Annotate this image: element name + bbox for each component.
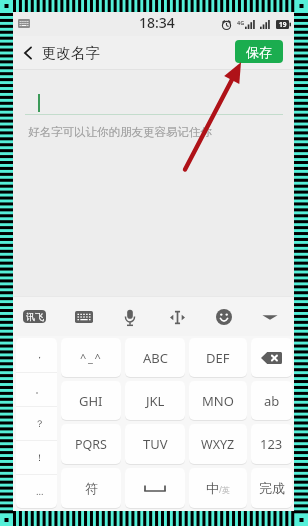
button[interactable]: Space — [125, 468, 185, 508]
button[interactable]: PQRS — [61, 424, 121, 464]
button[interactable]: 完成 — [251, 468, 292, 508]
staticText: TUV — [143, 435, 168, 453]
staticText: 19 — [279, 20, 287, 29]
staticText: 18:34 — [139, 13, 175, 32]
staticText: 4G — [237, 19, 245, 26]
staticText: 123 — [260, 435, 283, 453]
button[interactable]: TUV — [125, 424, 185, 464]
staticText: ， — [35, 349, 45, 361]
staticText: 讯飞 — [26, 311, 44, 322]
button[interactable]: Delete — [251, 338, 292, 377]
button[interactable]: ， — [16, 338, 57, 372]
staticText: ？ — [35, 418, 45, 430]
button[interactable]: Back — [13, 44, 106, 62]
other: Delete — [251, 338, 292, 377]
staticText: ab — [264, 392, 280, 410]
staticText: ！ — [35, 452, 45, 464]
button[interactable]: ABC — [125, 338, 185, 377]
button[interactable]: DEF — [189, 338, 247, 377]
staticText: ^_^ — [80, 350, 103, 365]
button[interactable]: Emoji — [210, 303, 238, 331]
staticText: 符 — [85, 480, 98, 496]
button[interactable]: MNO — [189, 381, 247, 420]
staticText: 保存 — [246, 44, 272, 60]
other: Back — [21, 46, 35, 60]
staticText: … — [36, 485, 44, 498]
button[interactable]: ！ — [16, 441, 57, 474]
staticText: 中 — [206, 480, 219, 496]
button[interactable]: Voice input — [116, 303, 144, 331]
button[interactable]: 。 — [16, 373, 57, 406]
staticText: 完成 — [259, 480, 285, 496]
button[interactable]: Hide keyboard — [256, 303, 284, 331]
staticText: PQRS — [75, 436, 107, 453]
button[interactable]: GHI — [61, 381, 121, 420]
staticText: 好名字可以让你的朋友更容易记住你 — [28, 125, 212, 139]
staticText: 更改名字 — [42, 44, 100, 62]
staticText: WXYZ — [201, 436, 235, 453]
button[interactable]: ^_^ — [61, 338, 121, 377]
button[interactable]: … — [16, 475, 57, 508]
button[interactable]: 讯飞 — [23, 310, 46, 323]
button[interactable]: Keyboard — [70, 303, 98, 331]
button[interactable]: 123 — [251, 424, 292, 464]
staticText: 。 — [35, 384, 45, 396]
staticText: JKL — [146, 392, 165, 410]
button[interactable]: 符 — [61, 468, 121, 508]
button[interactable]: 中 — [189, 468, 247, 508]
staticText: GHI — [79, 392, 103, 410]
staticText: ABC — [143, 349, 168, 367]
button[interactable]: ab — [251, 381, 292, 420]
other: Space — [125, 468, 185, 508]
button[interactable]: WXYZ — [189, 424, 247, 464]
button[interactable]: 保存 — [235, 40, 283, 63]
button[interactable]: ？ — [16, 407, 57, 440]
staticText: MNO — [202, 392, 234, 410]
staticText: DEF — [206, 349, 230, 367]
button[interactable]: Move cursor — [163, 303, 191, 331]
button[interactable]: JKL — [125, 381, 185, 420]
staticText: /英 — [219, 484, 230, 495]
